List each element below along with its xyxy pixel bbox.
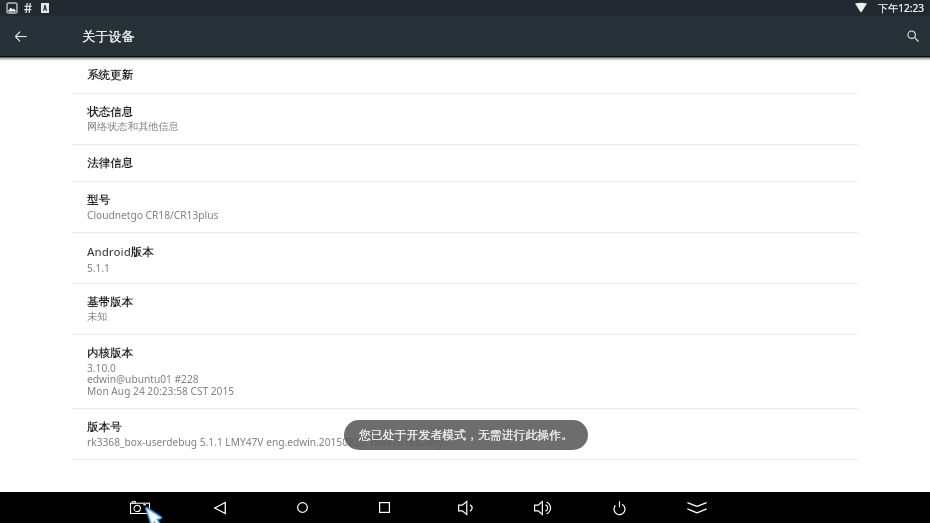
staticText: 3.10.0 edwin@ubuntu01 #228 Mon Aug 24 20…: [87, 361, 235, 398]
staticText: Cloudnetgo CR18/CR13plus: [87, 208, 219, 222]
staticText: 状态信息: [87, 105, 133, 119]
button[interactable]: Volume up: [503, 492, 581, 523]
staticText: Android版本: [87, 244, 154, 260]
button[interactable]: 内核版本: [0, 335, 930, 409]
button[interactable]: 系统更新: [0, 57, 930, 94]
button[interactable]: Notifications: [658, 492, 736, 523]
staticText: 系统更新: [87, 68, 133, 82]
staticText: 内核版本: [87, 346, 133, 360]
button[interactable]: Screenshot: [101, 492, 179, 523]
button[interactable]: 版本号: [0, 409, 930, 460]
staticText: rk3368_box-userdebug 5.1.1 LMY47V eng.ed…: [87, 435, 449, 449]
button[interactable]: 基带版本: [0, 284, 930, 335]
button[interactable]: 法律信息: [0, 145, 930, 182]
staticText: 下午12:23: [878, 1, 924, 15]
staticText: 法律信息: [87, 156, 133, 170]
staticText: 关于设备: [82, 28, 135, 45]
button[interactable]: Power: [580, 492, 658, 523]
button[interactable]: 状态信息: [0, 94, 930, 145]
staticText: 基带版本: [87, 295, 133, 309]
staticText: 5.1.1: [87, 261, 110, 275]
staticText: 未知: [87, 310, 108, 323]
staticText: 版本号: [87, 420, 122, 434]
staticText: 您已处于开发者模式，无需进行此操作。: [359, 428, 574, 443]
button[interactable]: Recent apps: [345, 492, 423, 523]
button[interactable]: Volume down: [425, 492, 503, 523]
button[interactable]: Back: [1, 16, 41, 57]
button[interactable]: 型号: [0, 182, 930, 233]
staticText: 网络状态和其他信息: [87, 120, 179, 133]
button[interactable]: Back: [181, 492, 259, 523]
button[interactable]: Search: [893, 16, 930, 57]
staticText: 型号: [87, 193, 110, 207]
button[interactable]: Home: [263, 492, 341, 523]
button[interactable]: Android版本: [0, 233, 930, 284]
